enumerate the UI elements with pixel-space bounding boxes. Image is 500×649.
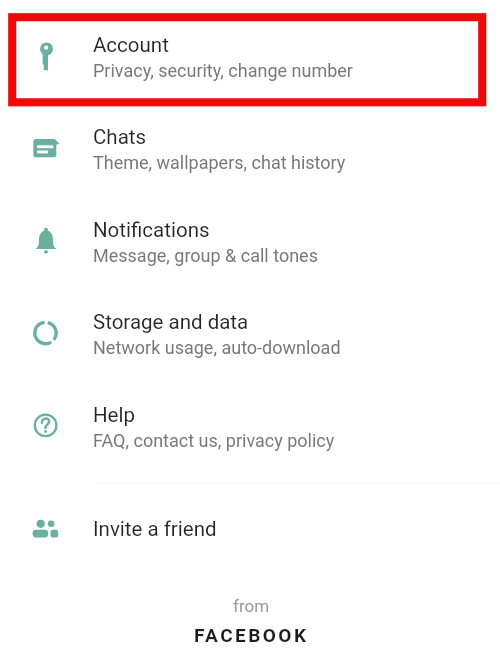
staticText: Help: [93, 403, 135, 427]
staticText: Chats: [93, 125, 147, 149]
staticText: Notifications: [93, 218, 210, 242]
button[interactable]: Account: [0, 18, 500, 104]
button[interactable]: Help: [0, 387, 500, 473]
staticText: Storage and data: [93, 310, 249, 334]
staticText: from: [233, 596, 270, 616]
button[interactable]: Invite a friend: [0, 495, 500, 555]
staticText: FAQ, contact us, privacy policy: [93, 430, 335, 451]
staticText: Invite a friend: [93, 517, 217, 541]
button[interactable]: Notifications: [0, 202, 500, 288]
staticText: Network usage, auto-download: [93, 337, 341, 358]
staticText: Privacy, security, change number: [93, 60, 353, 81]
staticText: FACEBOOK: [194, 624, 309, 646]
button[interactable]: Storage and data: [0, 294, 500, 380]
staticText: Theme, wallpapers, chat history: [93, 152, 346, 173]
other: Invite a friend: [0, 495, 500, 555]
button[interactable]: Chats: [0, 110, 500, 196]
staticText: Account: [93, 33, 169, 57]
staticText: Message, group & call tones: [93, 245, 318, 266]
